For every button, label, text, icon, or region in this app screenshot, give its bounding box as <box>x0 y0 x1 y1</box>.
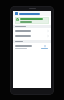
other: App icon <box>15 12 18 15</box>
button[interactable]: App icon <box>13 11 51 16</box>
other: Success <box>16 18 19 21</box>
button[interactable]: Open <box>13 33 51 38</box>
button[interactable]: Action <box>40 44 49 50</box>
button[interactable]: Success <box>15 17 49 24</box>
button[interactable]: Open <box>13 28 51 33</box>
